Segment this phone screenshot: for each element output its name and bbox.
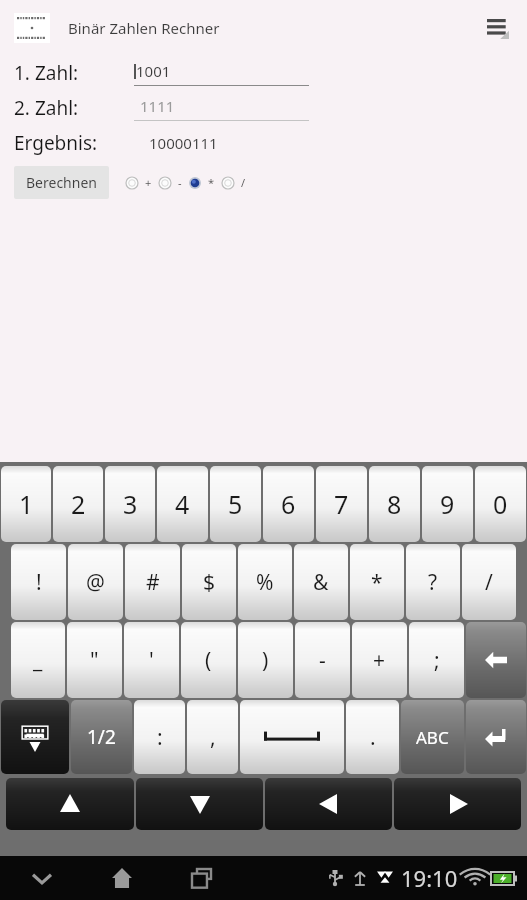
staticText: ABC bbox=[416, 726, 449, 749]
staticText: 9 bbox=[440, 487, 455, 521]
button[interactable]: @ bbox=[68, 544, 123, 620]
button[interactable]: + bbox=[352, 622, 407, 698]
button[interactable]: ABC bbox=[401, 700, 464, 774]
button[interactable]: Home bbox=[100, 856, 144, 900]
staticText: 10000111 bbox=[149, 133, 218, 153]
staticText: 2. Zahl: bbox=[14, 95, 79, 121]
staticText: , bbox=[210, 723, 216, 752]
button[interactable]: Recent apps bbox=[180, 856, 224, 900]
staticText: 19:10 bbox=[401, 863, 458, 893]
button[interactable] bbox=[221, 176, 235, 190]
staticText: 1. Zahl: bbox=[14, 60, 79, 86]
button[interactable]: % bbox=[238, 544, 292, 620]
staticText: @ bbox=[86, 568, 105, 597]
button[interactable]: $ bbox=[182, 544, 236, 620]
staticText: - bbox=[178, 175, 182, 190]
button[interactable]: Hide keyboard bbox=[1, 700, 69, 774]
button[interactable] bbox=[158, 176, 172, 190]
button[interactable]: ? bbox=[406, 544, 460, 620]
button[interactable]: Up bbox=[6, 778, 134, 830]
staticText: * bbox=[371, 568, 383, 597]
button[interactable]: Right bbox=[394, 778, 521, 830]
button[interactable]: 5 bbox=[210, 466, 261, 542]
button[interactable]: / bbox=[462, 544, 516, 620]
staticText: # bbox=[146, 568, 160, 597]
staticText: 3 bbox=[123, 487, 138, 521]
staticText: Binär Zahlen Rechner bbox=[68, 18, 220, 38]
staticText: 2 bbox=[71, 487, 86, 521]
staticText: . bbox=[370, 723, 376, 752]
staticText: 5 bbox=[228, 487, 243, 521]
staticText: 8 bbox=[387, 487, 402, 521]
button[interactable]: Space bbox=[240, 700, 344, 774]
staticText: " bbox=[90, 646, 99, 675]
button[interactable]: 9 bbox=[422, 466, 473, 542]
button[interactable]: Back bbox=[20, 856, 64, 900]
button[interactable]: * bbox=[350, 544, 404, 620]
button[interactable]: 4 bbox=[157, 466, 208, 542]
button[interactable]: 7 bbox=[316, 466, 367, 542]
staticText: % bbox=[256, 568, 274, 597]
staticText: - bbox=[319, 646, 326, 675]
button[interactable]: Enter bbox=[466, 700, 526, 774]
staticText: ' bbox=[149, 646, 154, 675]
staticText: 4 bbox=[175, 487, 190, 521]
button[interactable]: ( bbox=[181, 622, 236, 698]
button[interactable] bbox=[188, 176, 202, 190]
staticText: ! bbox=[36, 568, 42, 597]
staticText: 1/2 bbox=[87, 724, 116, 750]
button[interactable]: Left bbox=[265, 778, 392, 830]
staticText: 6 bbox=[281, 487, 296, 521]
button[interactable]: # bbox=[125, 544, 180, 620]
staticText: * bbox=[208, 175, 215, 190]
staticText: & bbox=[313, 568, 329, 597]
button[interactable]: " bbox=[67, 622, 122, 698]
button[interactable]: - bbox=[295, 622, 350, 698]
staticText: $ bbox=[203, 568, 216, 597]
staticText: ( bbox=[205, 646, 212, 675]
staticText: 1 bbox=[19, 487, 34, 521]
staticText: + bbox=[373, 646, 386, 675]
button[interactable]: Down bbox=[136, 778, 263, 830]
staticText: ? bbox=[428, 568, 438, 597]
button[interactable]: 2 bbox=[53, 466, 103, 542]
staticText: 7 bbox=[334, 487, 349, 521]
button[interactable]: 0 bbox=[475, 466, 526, 542]
staticText: ) bbox=[262, 646, 269, 675]
staticText: + bbox=[145, 175, 152, 190]
button[interactable]: ) bbox=[238, 622, 293, 698]
button[interactable]: ! bbox=[11, 544, 66, 620]
button[interactable]: & bbox=[294, 544, 348, 620]
button[interactable]: 1 bbox=[1, 466, 51, 542]
button[interactable]: , bbox=[187, 700, 238, 774]
button[interactable]: 6 bbox=[263, 466, 314, 542]
button[interactable]: . bbox=[346, 700, 399, 774]
staticText: Berechnen bbox=[26, 173, 97, 192]
staticText: / bbox=[241, 175, 246, 190]
staticText: _ bbox=[33, 646, 43, 675]
button[interactable] bbox=[125, 176, 139, 190]
button[interactable]: Berechnen bbox=[14, 166, 109, 199]
staticText: 1111 bbox=[140, 96, 175, 116]
button[interactable]: _ bbox=[11, 622, 65, 698]
button[interactable]: Menu bbox=[483, 13, 513, 43]
staticText: / bbox=[485, 568, 493, 597]
button[interactable]: ' bbox=[124, 622, 179, 698]
button[interactable]: 8 bbox=[369, 466, 420, 542]
button[interactable]: Backspace bbox=[466, 622, 526, 698]
staticText: ; bbox=[434, 646, 440, 675]
staticText: 1001 bbox=[136, 61, 171, 81]
button[interactable]: 1/2 bbox=[71, 700, 132, 774]
staticText: : bbox=[157, 723, 163, 752]
staticText: 0 bbox=[493, 487, 508, 521]
button[interactable]: 3 bbox=[105, 466, 155, 542]
staticText: Ergebnis: bbox=[14, 130, 98, 156]
button[interactable]: : bbox=[134, 700, 185, 774]
button[interactable]: ; bbox=[409, 622, 464, 698]
